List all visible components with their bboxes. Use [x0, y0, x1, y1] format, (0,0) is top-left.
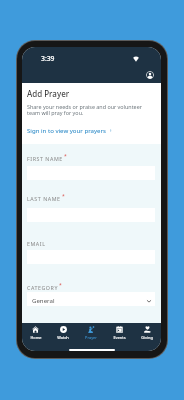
staticText: Events	[113, 335, 126, 340]
button[interactable]: Giving	[133, 323, 161, 343]
staticText: General	[32, 296, 55, 304]
button[interactable]: Sign in to view your prayers	[27, 126, 112, 134]
button[interactable]: Watch	[49, 323, 77, 343]
staticText: FIRST NAME	[27, 155, 63, 162]
staticText: EMAIL	[27, 240, 46, 247]
staticText: Giving	[141, 335, 153, 340]
staticText: Prayer	[85, 335, 97, 340]
staticText: CATEGORY	[27, 284, 58, 291]
staticText: 3:39	[41, 54, 55, 63]
staticText: Share your needs or praise and our volun…	[27, 103, 149, 117]
button[interactable]: General	[27, 292, 155, 306]
staticText: LAST NAME	[27, 195, 61, 202]
staticText: Home	[30, 335, 42, 340]
staticText: *	[64, 153, 67, 160]
button[interactable]: Account	[146, 71, 154, 79]
staticText: *	[62, 193, 65, 200]
button[interactable]: Events	[105, 323, 133, 343]
button[interactable]: Home	[22, 323, 49, 343]
staticText: *	[59, 282, 62, 289]
staticText: Watch	[57, 335, 69, 340]
button[interactable]: Prayer	[77, 323, 105, 343]
staticText: Add Prayer	[27, 88, 70, 99]
staticText: Sign in to view your prayers	[27, 126, 106, 134]
